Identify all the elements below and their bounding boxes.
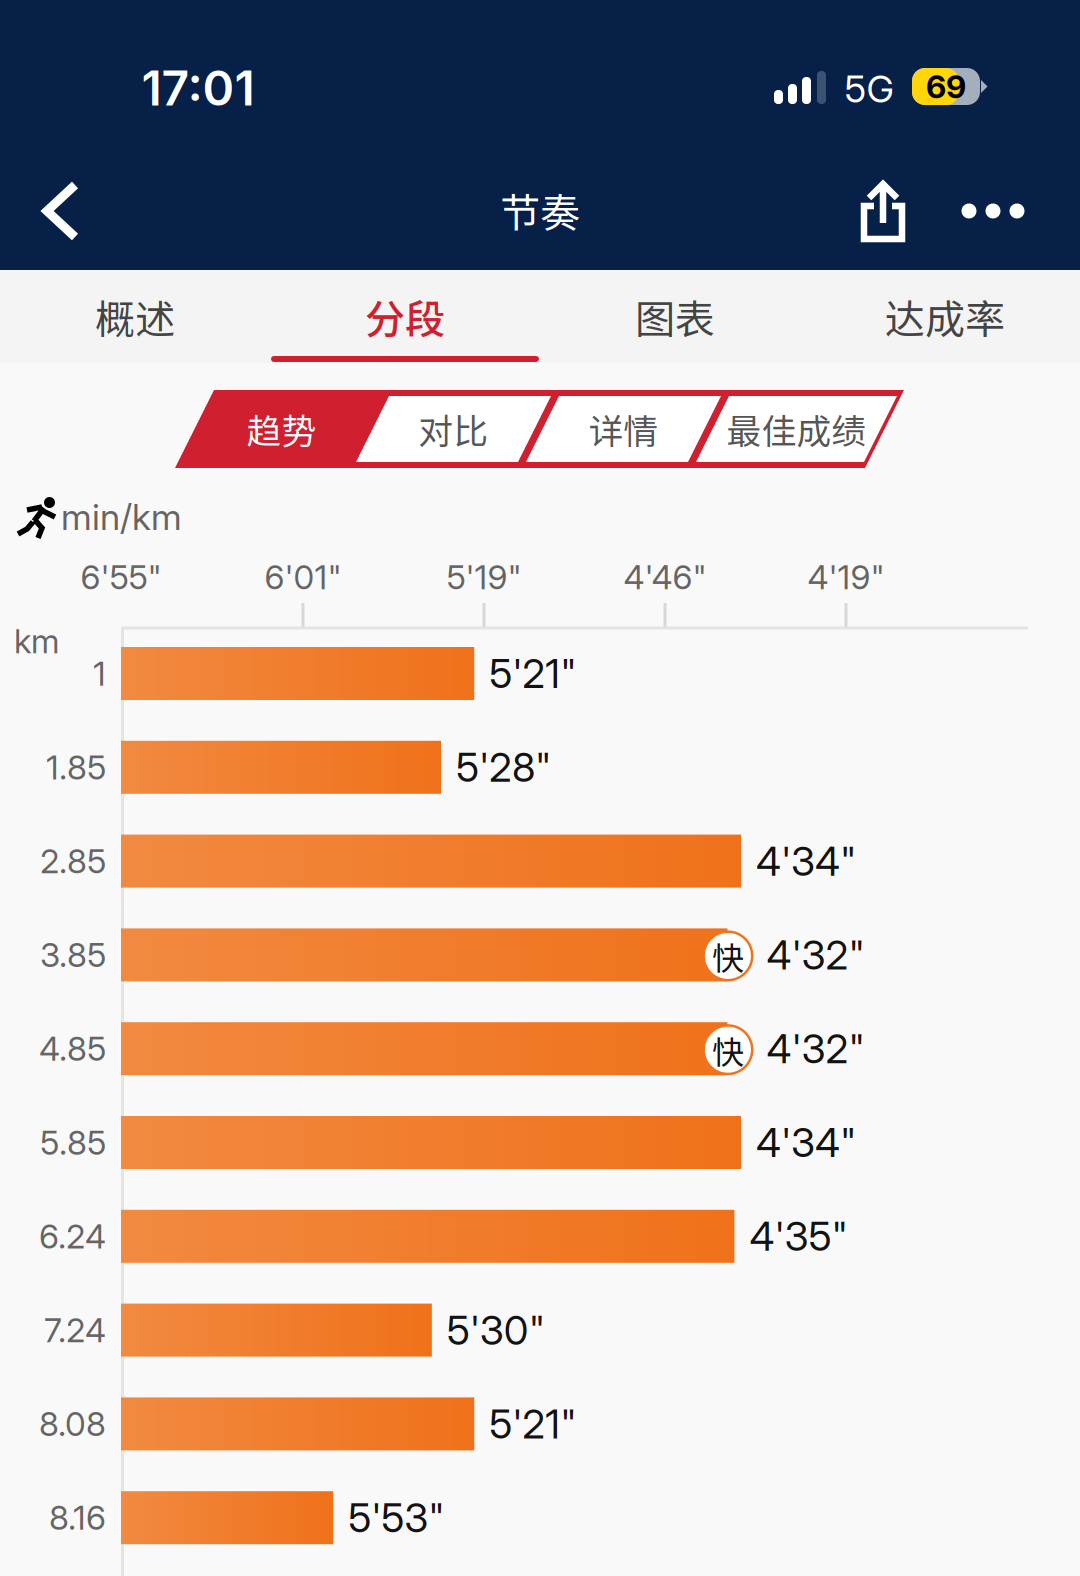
staticText: 达成率 <box>885 287 1005 345</box>
staticText: 5.85 <box>40 1122 106 1163</box>
staticText: 5'21" <box>489 649 576 698</box>
staticText: 4'35" <box>749 1212 847 1260</box>
staticText: 8.16 <box>49 1497 106 1538</box>
staticText: 快 <box>712 1026 744 1073</box>
staticText: 7.24 <box>44 1310 106 1350</box>
button[interactable]: 分段 <box>270 270 540 363</box>
staticText: 8.08 <box>39 1404 106 1444</box>
staticText: 4'32" <box>766 931 864 979</box>
staticText: km <box>14 621 59 661</box>
staticText: 4'46" <box>623 557 706 597</box>
staticText: 17:01 <box>141 59 254 117</box>
staticText: 6.24 <box>39 1216 106 1256</box>
button[interactable]: 详情 <box>553 390 693 468</box>
staticText: 1 <box>93 653 106 694</box>
staticText: 6'55" <box>80 557 161 597</box>
staticText: 详情 <box>588 404 658 454</box>
staticText: 图表 <box>635 287 715 345</box>
staticText: 1.85 <box>46 747 106 787</box>
staticText: 5'21" <box>489 1400 576 1448</box>
staticText: 5'28" <box>456 743 551 791</box>
staticText: 节奏 <box>500 181 580 239</box>
button[interactable]: 达成率 <box>810 270 1080 363</box>
staticText: 4'19" <box>807 557 884 597</box>
staticText: 69 <box>926 67 966 106</box>
button[interactable]: 最佳成绩 <box>723 390 869 468</box>
staticText: 2.85 <box>40 841 106 881</box>
button[interactable]: Back <box>14 152 108 270</box>
staticText: 快 <box>712 933 744 979</box>
button[interactable]: 对比 <box>383 390 523 468</box>
button[interactable]: 概述 <box>0 270 270 363</box>
button[interactable]: 图表 <box>540 270 810 363</box>
staticText: 5'19" <box>446 557 521 597</box>
button[interactable]: Share <box>835 154 931 268</box>
staticText: 分段 <box>365 287 445 345</box>
staticText: 概述 <box>95 287 175 345</box>
button[interactable]: 趋势 <box>209 390 353 468</box>
staticText: 趋势 <box>246 404 316 454</box>
staticText: 4'34" <box>756 1118 856 1167</box>
staticText: 5'30" <box>447 1306 545 1354</box>
staticText: 5'53" <box>348 1493 444 1542</box>
staticText: 4.85 <box>39 1028 106 1069</box>
staticText: min/km <box>61 495 182 539</box>
staticText: 5G <box>844 66 893 112</box>
staticText: 3.85 <box>40 935 106 975</box>
staticText: 6'01" <box>264 557 341 597</box>
staticText: 4'32" <box>766 1024 864 1073</box>
staticText: 最佳成绩 <box>726 404 866 454</box>
staticText: 对比 <box>418 404 488 454</box>
staticText: 4'34" <box>756 837 856 885</box>
button[interactable]: More <box>933 163 1052 259</box>
